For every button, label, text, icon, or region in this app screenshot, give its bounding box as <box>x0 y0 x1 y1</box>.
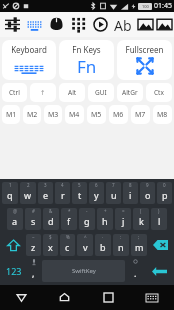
button[interactable]: 4 <box>55 182 70 204</box>
button[interactable]: . <box>126 259 145 283</box>
staticText: , <box>32 267 35 279</box>
button[interactable]: 9 <box>140 182 155 204</box>
staticText: Ab <box>114 16 132 35</box>
staticText: o <box>145 189 151 201</box>
button[interactable]: : <box>113 234 129 256</box>
button[interactable]: Back <box>0 285 43 310</box>
button[interactable]: = <box>115 208 131 230</box>
staticText: Fullscreen <box>125 44 164 55</box>
button[interactable]: Alt <box>59 83 85 102</box>
button[interactable]: M4 <box>65 105 84 124</box>
button[interactable]: Voice input <box>26 259 41 283</box>
button[interactable]: 123 <box>1 259 26 283</box>
button[interactable]: ↑ <box>30 83 56 102</box>
staticText: SwiftKey <box>72 267 96 275</box>
button[interactable]: · <box>95 234 111 256</box>
button[interactable]: M8 <box>153 105 172 124</box>
button[interactable]: - <box>79 208 95 230</box>
button[interactable]: Space <box>42 260 125 282</box>
button[interactable]: Recents <box>86 285 130 310</box>
button[interactable]: Image <box>135 14 156 35</box>
staticText: ~ <box>32 234 35 240</box>
staticText: = <box>122 208 125 214</box>
button[interactable]: + <box>97 208 113 230</box>
staticText: * <box>68 208 71 214</box>
staticText: z <box>31 241 36 253</box>
staticText: M7 <box>135 110 146 120</box>
button[interactable]: Ctrl <box>2 83 27 102</box>
button[interactable]: AltGr <box>117 83 143 102</box>
staticText: g <box>84 215 90 227</box>
button[interactable]: Enter <box>145 259 173 283</box>
staticText: 2 <box>27 182 30 188</box>
button[interactable]: 2 <box>20 182 36 204</box>
button[interactable]: 8 <box>123 182 138 204</box>
button[interactable]: & <box>43 208 59 230</box>
button[interactable]: Play <box>90 14 111 35</box>
button[interactable]: # <box>25 208 41 230</box>
button[interactable]: M7 <box>131 105 150 124</box>
button[interactable]: % <box>60 234 75 256</box>
button[interactable]: Numpad <box>68 14 89 35</box>
button[interactable]: Backspace <box>148 233 173 257</box>
staticText: ( <box>140 208 142 214</box>
staticText: u <box>111 189 117 201</box>
button[interactable]: Fullscreen <box>117 40 172 80</box>
staticText: 3 <box>44 182 47 188</box>
staticText: 100 <box>142 4 149 9</box>
button[interactable]: Settings sliders <box>2 14 23 35</box>
staticText: w <box>24 189 32 201</box>
button[interactable]: Fn Keys <box>59 40 114 80</box>
button[interactable]: 7 <box>106 182 121 204</box>
staticText: M4 <box>69 110 80 120</box>
button[interactable]: Home <box>43 285 86 310</box>
staticText: 8 <box>129 182 132 188</box>
button[interactable]: @ <box>7 208 23 230</box>
button[interactable]: M3 <box>44 105 62 124</box>
button[interactable]: ^ <box>77 234 93 256</box>
staticText: v <box>83 241 88 253</box>
button[interactable]: Mouse <box>46 14 67 35</box>
staticText: ) <box>158 208 160 214</box>
button[interactable]: 3 <box>38 182 53 204</box>
button[interactable]: ~ <box>26 234 41 256</box>
button[interactable]: More <box>157 14 172 35</box>
button[interactable]: M6 <box>109 105 128 124</box>
staticText: t <box>78 189 82 201</box>
staticText: r <box>61 189 65 201</box>
staticText: Keyboard <box>11 44 47 55</box>
button[interactable]: 0 <box>157 182 172 204</box>
button[interactable]: ) <box>151 208 167 230</box>
staticText: ^ <box>84 234 87 240</box>
staticText: 9 <box>146 182 149 188</box>
staticText: 4 <box>61 182 64 188</box>
button[interactable]: Shift <box>1 233 25 257</box>
staticText: M5 <box>91 110 102 120</box>
staticText: 7 <box>112 182 115 188</box>
button[interactable]: M5 <box>87 105 106 124</box>
button[interactable]: 1 <box>2 182 18 204</box>
staticText: Fn <box>77 55 97 75</box>
staticText: # <box>32 208 35 214</box>
button[interactable]: M1 <box>2 105 20 124</box>
button[interactable]: ; <box>131 234 147 256</box>
staticText: + <box>104 208 107 214</box>
button[interactable]: $ <box>43 234 58 256</box>
button[interactable]: Keyboard <box>24 14 45 35</box>
staticText: 0 <box>163 182 166 188</box>
staticText: GUI <box>95 88 107 97</box>
button[interactable]: GUI <box>88 83 114 102</box>
button[interactable]: 6 <box>89 182 104 204</box>
button[interactable]: 5 <box>72 182 87 204</box>
staticText: h <box>102 215 108 227</box>
button[interactable]: Ab <box>112 14 134 36</box>
button[interactable]: Ctx <box>146 83 172 102</box>
staticText: M2 <box>27 110 38 120</box>
button[interactable]: M2 <box>23 105 41 124</box>
staticText: $ <box>49 234 52 240</box>
button[interactable]: Keyboard <box>2 40 56 80</box>
button[interactable]: Switch keyboard <box>130 285 174 310</box>
button[interactable]: * <box>61 208 77 230</box>
staticText: ; <box>138 234 140 240</box>
button[interactable]: ( <box>133 208 149 230</box>
